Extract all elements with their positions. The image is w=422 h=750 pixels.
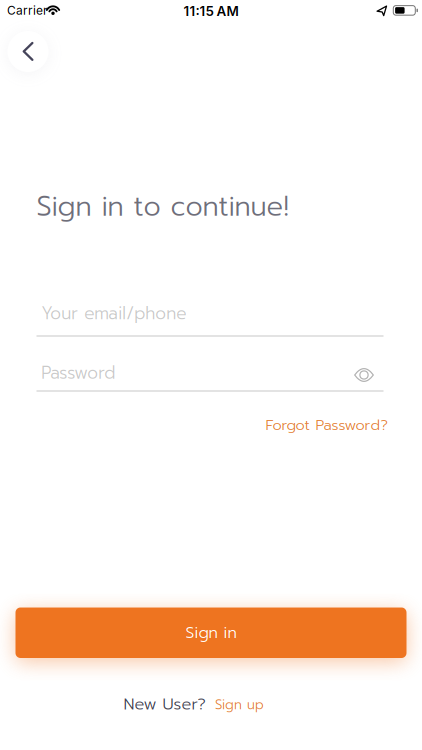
staticText: 11:15 AM xyxy=(183,3,238,19)
staticText: Password xyxy=(41,360,115,386)
button[interactable]: Forgot Password? xyxy=(261,410,391,440)
staticText: Sign up xyxy=(215,695,264,715)
button[interactable]: Back xyxy=(10,30,46,73)
staticText: Sign in xyxy=(185,621,236,645)
staticText: New User? xyxy=(123,692,205,716)
button[interactable]: Sign in xyxy=(15,607,406,658)
staticText: Carrier xyxy=(7,3,48,18)
button[interactable]: Sign up xyxy=(211,691,268,719)
staticText: Sign in to continue! xyxy=(36,186,288,227)
staticText: Forgot Password? xyxy=(265,414,387,436)
button[interactable]: Show password xyxy=(346,360,382,389)
staticText: Your email/phone xyxy=(41,301,186,326)
